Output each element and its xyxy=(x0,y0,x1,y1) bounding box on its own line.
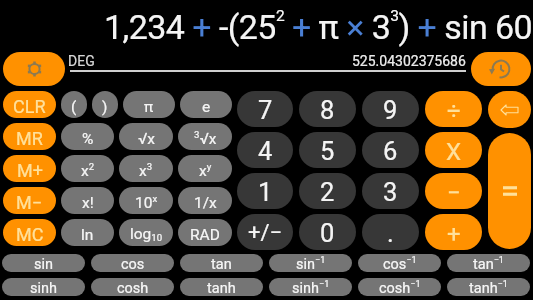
button[interactable]: Backspace xyxy=(488,91,531,128)
staticText: . xyxy=(387,218,394,248)
button[interactable]: tan xyxy=(180,254,263,272)
button[interactable]: e xyxy=(180,91,232,118)
button[interactable]: cosh−1 xyxy=(358,278,441,296)
button[interactable]: sinh−1 xyxy=(269,278,352,296)
button[interactable]: ÷ xyxy=(425,91,482,127)
staticText: 5 xyxy=(320,136,335,166)
button[interactable]: tan−1 xyxy=(447,254,530,272)
staticText: cosh xyxy=(117,280,149,296)
staticText: √x xyxy=(138,130,155,148)
staticText: 10x xyxy=(135,193,158,212)
button[interactable]: 9 xyxy=(362,91,419,127)
staticText: cos xyxy=(121,256,145,272)
staticText: x2 xyxy=(81,161,95,180)
button[interactable]: 3 xyxy=(362,173,419,209)
staticText: ) xyxy=(102,98,108,116)
button[interactable]: cos xyxy=(91,254,174,272)
staticText: 1 xyxy=(258,177,273,207)
button[interactable]: tanh xyxy=(180,278,263,296)
staticText: x3 xyxy=(139,161,153,180)
button[interactable]: 2 xyxy=(299,173,356,209)
button[interactable]: x! xyxy=(61,187,114,214)
button[interactable]: x3 xyxy=(119,155,173,182)
staticText: log10 xyxy=(130,225,163,244)
staticText: π xyxy=(144,98,154,116)
staticText: ( xyxy=(71,98,77,116)
staticText: xy xyxy=(199,161,212,180)
button[interactable]: ( xyxy=(61,91,87,118)
button[interactable]: +/− xyxy=(237,214,293,250)
button[interactable]: % xyxy=(61,123,114,150)
staticText: CLR xyxy=(13,96,46,117)
button[interactable]: + xyxy=(425,214,482,250)
button[interactable]: . xyxy=(362,214,419,250)
button[interactable]: MR xyxy=(3,123,56,150)
button[interactable]: 6 xyxy=(362,132,419,168)
staticText: 2 xyxy=(320,177,335,207)
staticText: 3 xyxy=(383,177,398,207)
button[interactable]: 1 xyxy=(237,173,293,209)
button[interactable]: sin−1 xyxy=(269,254,352,272)
staticText: tan xyxy=(211,256,232,272)
button[interactable]: RAD xyxy=(178,219,232,246)
staticText: MC xyxy=(16,224,44,245)
staticText: sinh xyxy=(30,280,58,296)
staticText: 7 xyxy=(258,95,273,125)
button[interactable]: M+ xyxy=(3,155,56,182)
staticText: e xyxy=(202,98,211,116)
staticText: X xyxy=(446,138,462,166)
staticText: sinh−1 xyxy=(292,279,330,296)
button[interactable]: 8 xyxy=(299,91,356,127)
staticText: tan−1 xyxy=(473,255,504,272)
staticText: 4 xyxy=(258,136,273,166)
button[interactable]: 4 xyxy=(237,132,293,168)
button[interactable]: sinh xyxy=(2,278,85,296)
staticText: MR xyxy=(16,128,43,149)
staticText: x! xyxy=(82,194,94,212)
staticText: 0 xyxy=(320,218,335,248)
button[interactable]: 7 xyxy=(237,91,293,127)
button[interactable]: π xyxy=(123,91,175,118)
button[interactable]: 5 xyxy=(299,132,356,168)
staticText: +/− xyxy=(248,220,283,246)
button[interactable]: CLR xyxy=(3,91,56,118)
button[interactable] xyxy=(488,133,531,249)
button[interactable]: cosh xyxy=(91,278,174,296)
button[interactable]: Settings xyxy=(3,52,65,86)
staticText: ÷ xyxy=(447,97,461,125)
button[interactable]: tanh−1 xyxy=(447,278,530,296)
staticText: cosh−1 xyxy=(379,279,421,296)
button[interactable]: cos−1 xyxy=(358,254,441,272)
staticText: ln xyxy=(81,226,94,244)
staticText: + xyxy=(447,220,461,248)
staticText: 3√x xyxy=(194,129,217,148)
staticText: 525.04302375686 xyxy=(352,53,466,69)
staticText: M+ xyxy=(17,160,43,181)
staticText: 1/x xyxy=(194,194,217,212)
button[interactable]: x2 xyxy=(61,155,114,182)
button[interactable]: log10 xyxy=(119,219,173,246)
button[interactable]: sin xyxy=(2,254,85,272)
button[interactable]: 0 xyxy=(299,214,356,250)
button[interactable]: MC xyxy=(3,219,56,246)
button[interactable]: M− xyxy=(3,187,56,214)
button[interactable]: 1/x xyxy=(178,187,232,214)
button[interactable]: √x xyxy=(119,123,173,150)
staticText: M− xyxy=(16,192,43,213)
button[interactable]: 10x xyxy=(119,187,173,214)
button[interactable]: History xyxy=(471,52,531,86)
button[interactable]: ln xyxy=(61,219,114,246)
staticText: RAD xyxy=(190,226,220,244)
staticText: − xyxy=(447,179,461,207)
staticText: sin xyxy=(34,256,54,272)
button[interactable]: xy xyxy=(178,155,232,182)
button[interactable]: X xyxy=(425,132,482,168)
staticText: tanh xyxy=(207,280,236,296)
staticText: % xyxy=(82,130,94,148)
staticText: tanh−1 xyxy=(469,279,508,296)
button[interactable]: ) xyxy=(92,91,118,118)
staticText: 1,234 + -(252 + π × 33) + sin 60 xyxy=(104,7,533,48)
button[interactable]: 3√x xyxy=(178,123,232,150)
staticText: DEG xyxy=(68,53,95,69)
button[interactable]: − xyxy=(425,173,482,209)
